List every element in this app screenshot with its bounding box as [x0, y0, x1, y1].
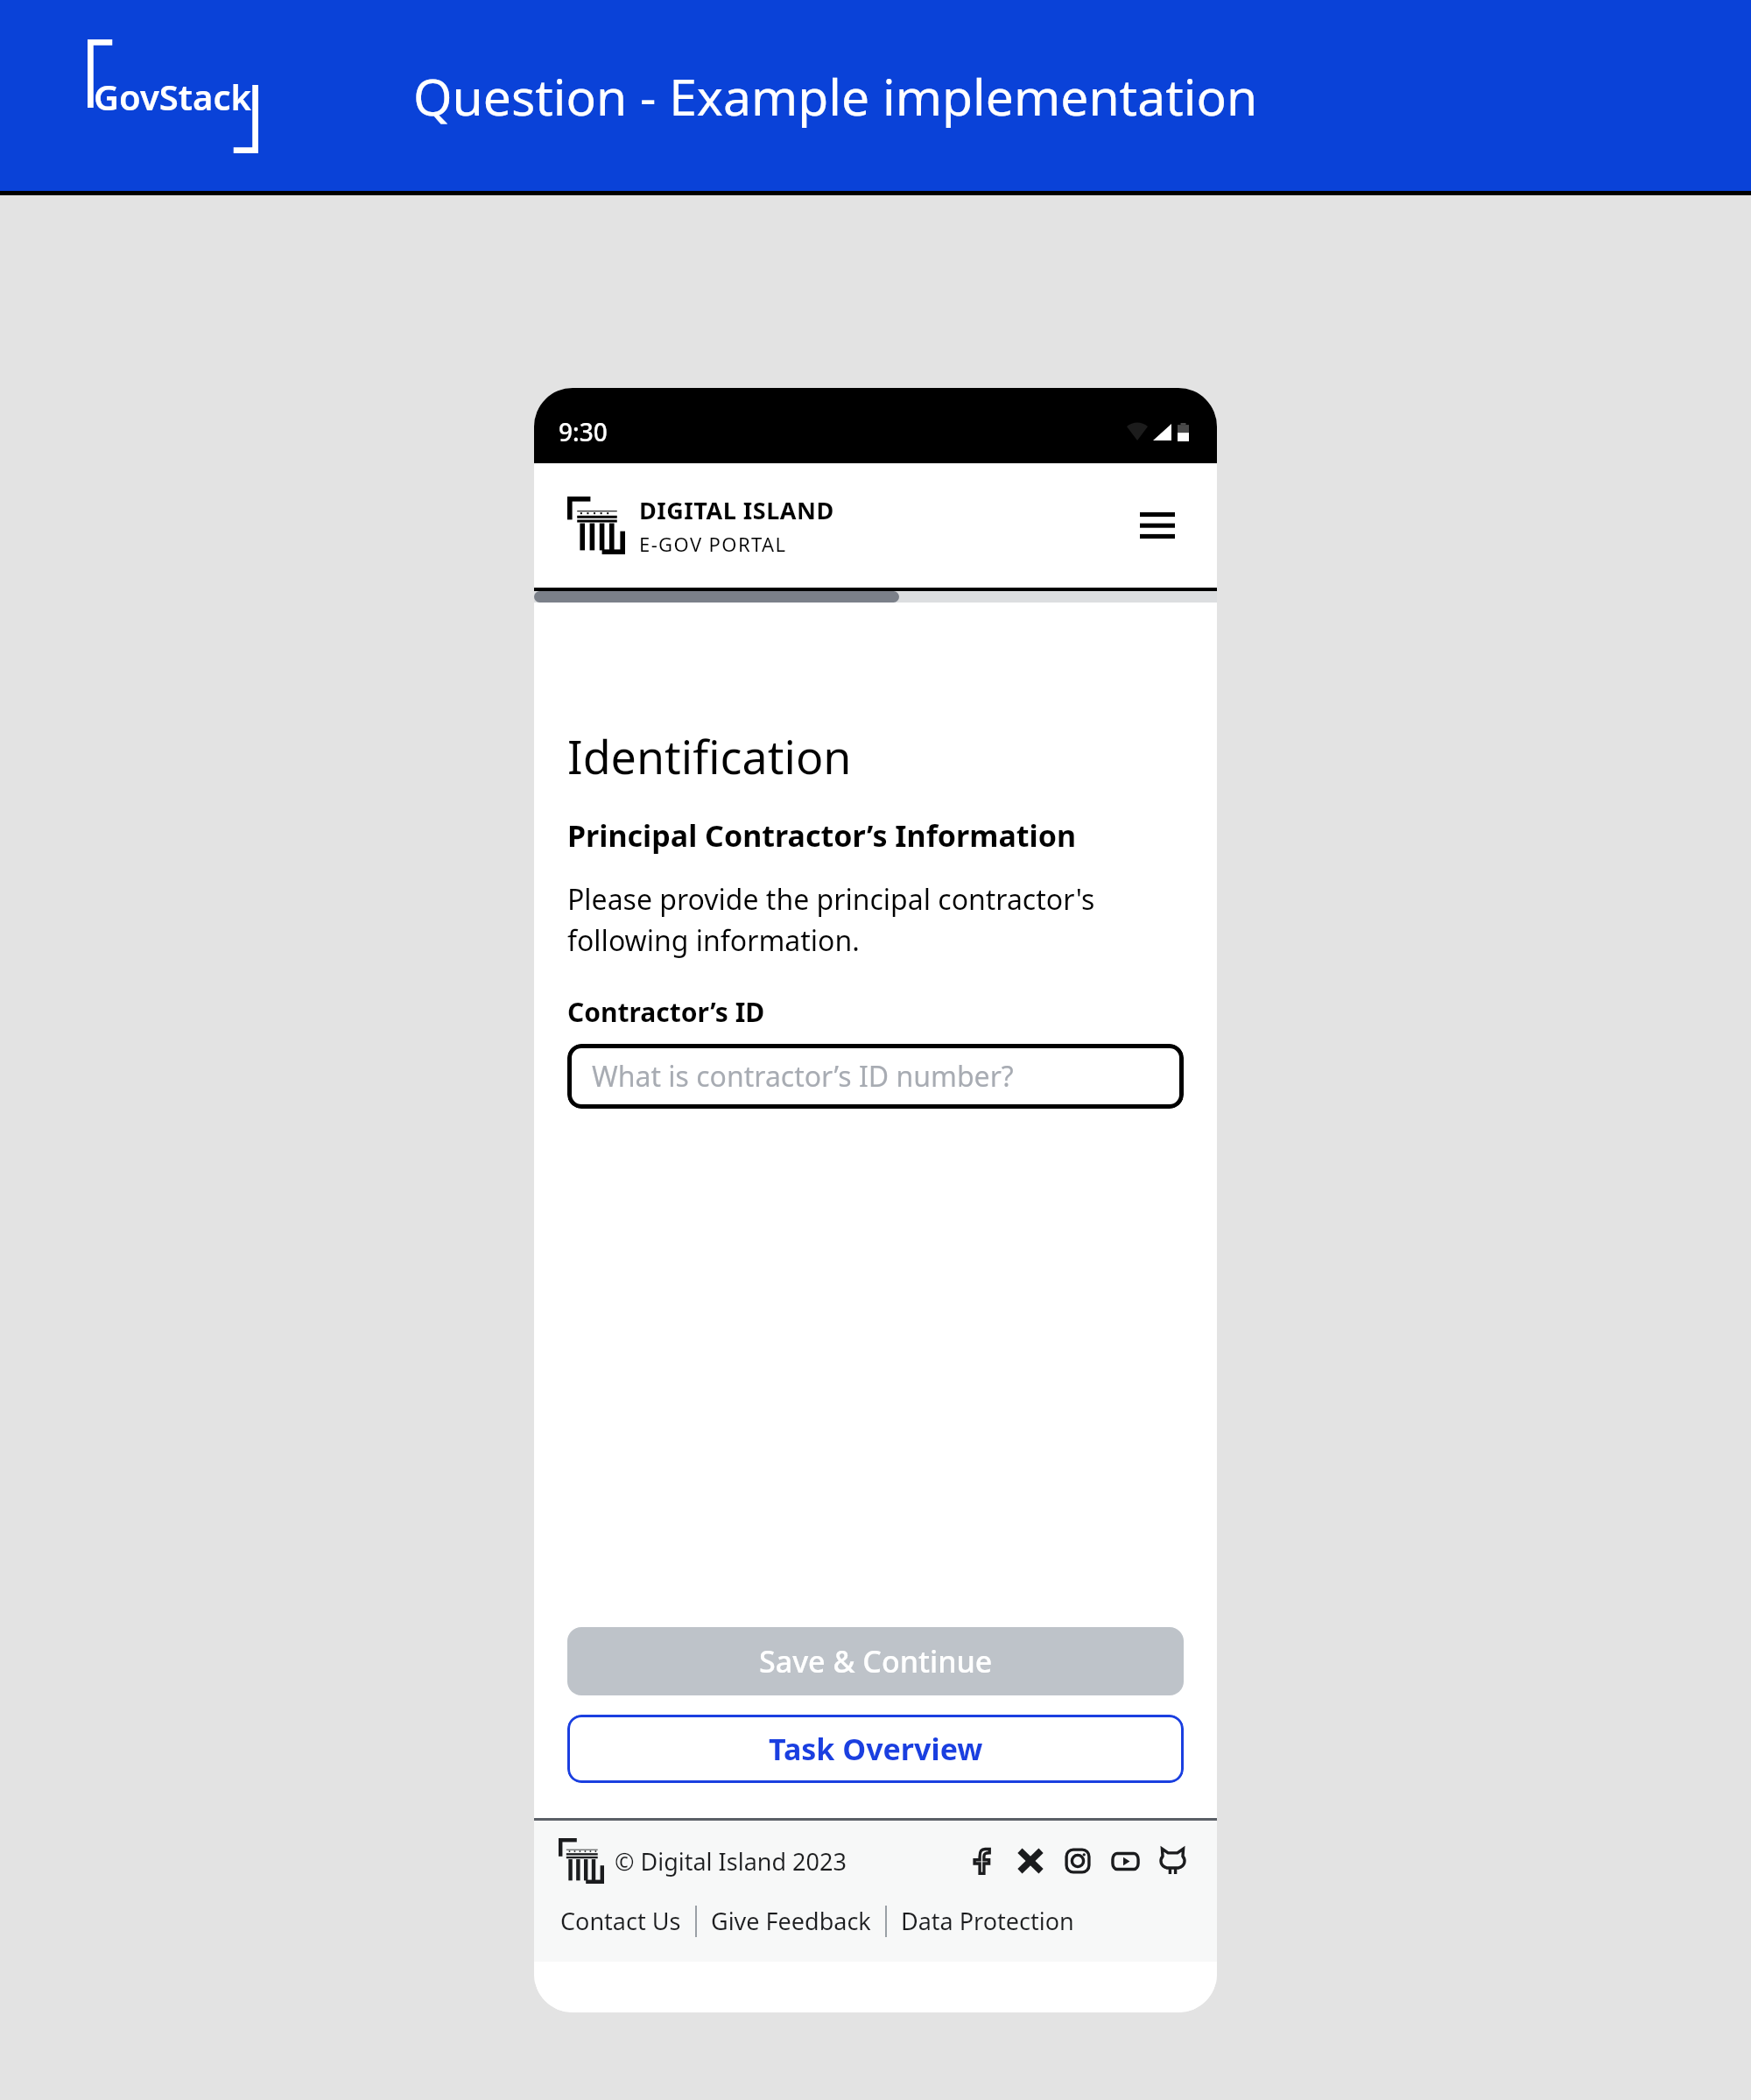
- staticText: Principal Contractor’s Information: [567, 815, 1077, 856]
- button[interactable]: Data Protection: [901, 1905, 1074, 1937]
- button[interactable]: Give Feedback: [711, 1905, 871, 1937]
- staticText: Contractor’s ID: [567, 994, 765, 1030]
- button[interactable]: Instagram: [1058, 1841, 1098, 1881]
- staticText: DIGITAL ISLAND: [639, 494, 834, 526]
- staticText: E-GOV PORTAL: [639, 531, 787, 557]
- staticText: What is contractor’s ID number?: [592, 1057, 1014, 1096]
- staticText: Give Feedback: [711, 1905, 871, 1937]
- button[interactable]: GitHub: [1152, 1841, 1192, 1881]
- button[interactable]: YouTube: [1105, 1841, 1145, 1881]
- staticText: Question - Example implementation: [413, 62, 1258, 130]
- staticText: Please provide the principal contractor'…: [567, 880, 1184, 959]
- button[interactable]: Facebook: [963, 1841, 1003, 1881]
- staticText: Task Overview: [769, 1729, 983, 1769]
- button[interactable]: Task Overview: [567, 1715, 1184, 1783]
- staticText: Identification: [567, 725, 852, 787]
- staticText: Data Protection: [901, 1905, 1074, 1937]
- button[interactable]: What is contractor’s ID number?: [567, 1044, 1184, 1109]
- staticText: 9:30: [559, 415, 608, 448]
- staticText: Save & Continue: [759, 1641, 993, 1681]
- button[interactable]: Save & Continue: [567, 1627, 1184, 1695]
- button[interactable]: Contact Us: [560, 1905, 681, 1937]
- button[interactable]: X: [1010, 1841, 1051, 1881]
- button[interactable]: Open menu: [1131, 499, 1184, 552]
- staticText: Contact Us: [560, 1905, 681, 1937]
- staticText: GovStack: [94, 73, 252, 120]
- staticText: © Digital Island 2023: [615, 1845, 847, 1878]
